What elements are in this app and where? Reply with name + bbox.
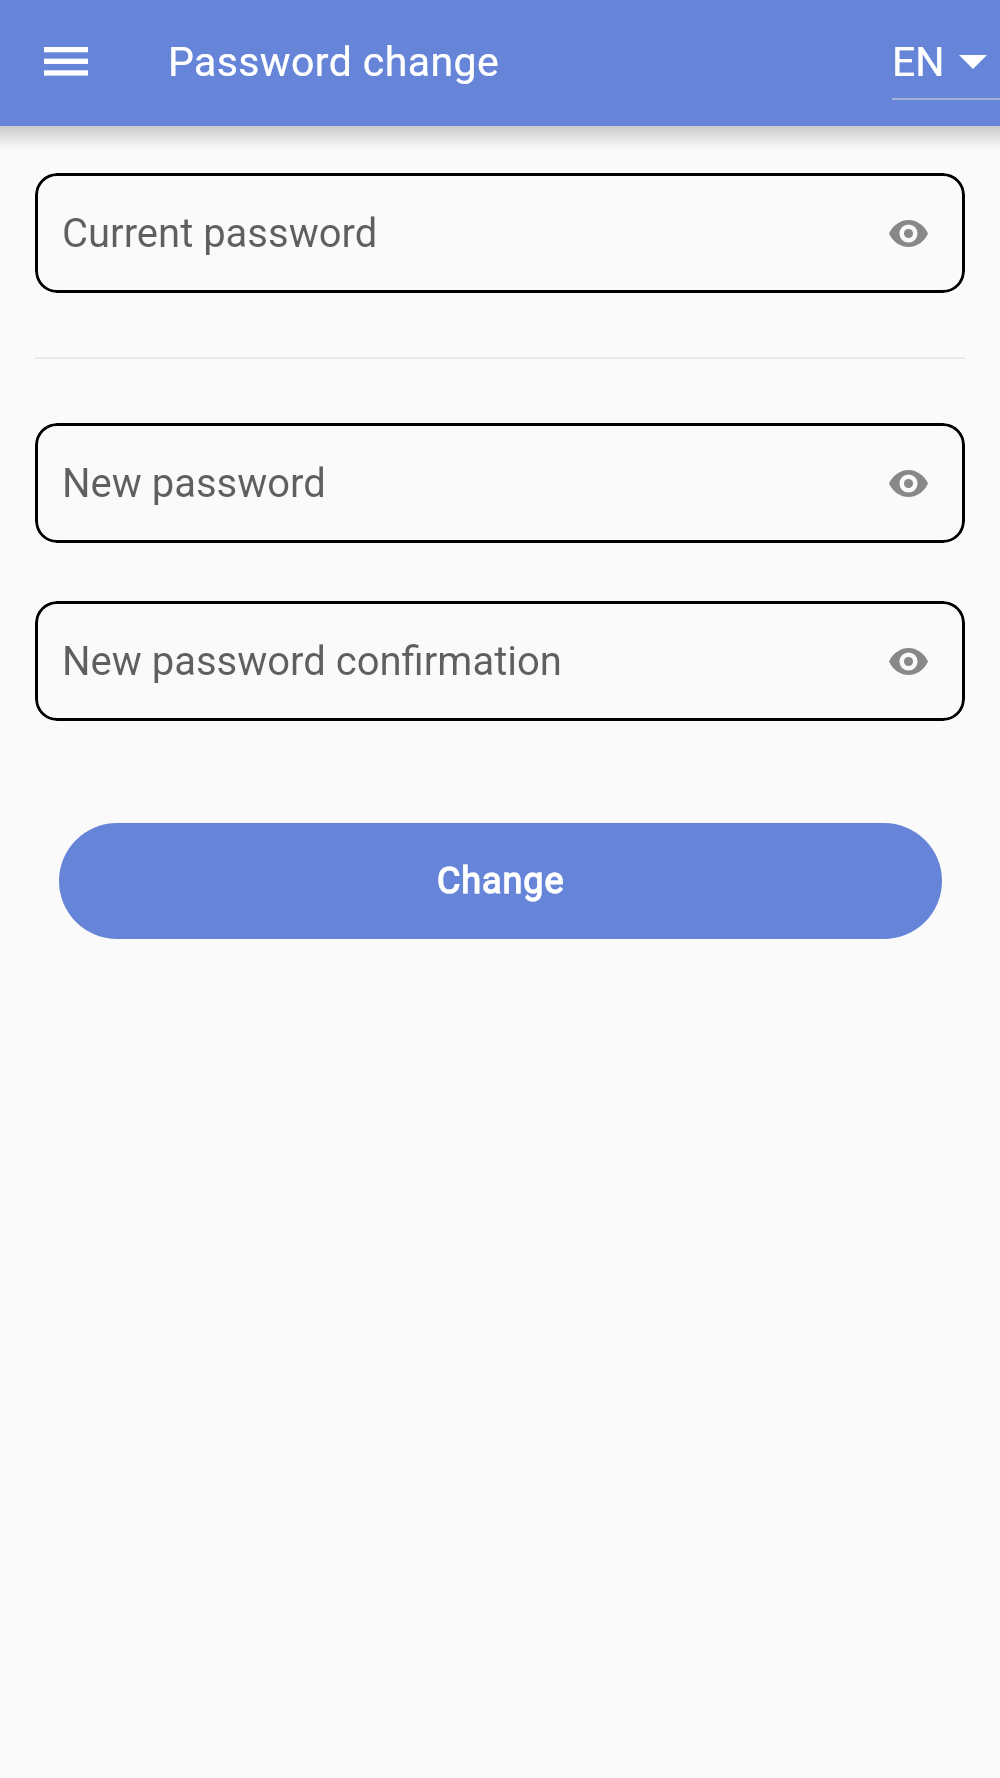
staticText: New password confirmation <box>62 638 562 685</box>
button[interactable]: Change <box>59 823 942 939</box>
button[interactable]: Current password <box>35 173 965 293</box>
staticText: EN <box>892 38 945 86</box>
staticText: Current password <box>62 210 378 257</box>
button[interactable]: Open navigation menu <box>22 0 110 126</box>
button[interactable]: New password confirmation <box>35 601 965 721</box>
button[interactable]: Show password <box>879 204 937 262</box>
staticText: New password <box>62 460 326 507</box>
button[interactable]: Show password <box>879 632 937 690</box>
staticText: Change <box>437 860 565 902</box>
button[interactable]: Show password <box>879 454 937 512</box>
other: Choose language <box>959 55 987 69</box>
button[interactable]: New password <box>35 423 965 543</box>
button[interactable]: EN <box>892 32 987 92</box>
staticText: Password change <box>168 38 500 86</box>
